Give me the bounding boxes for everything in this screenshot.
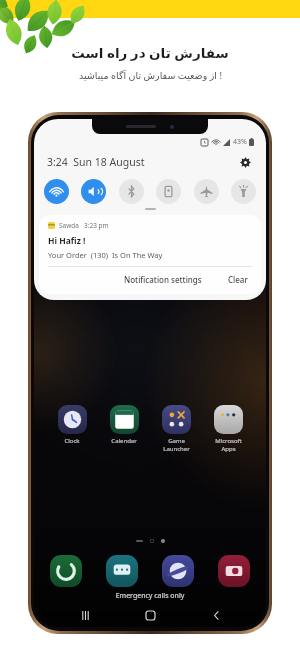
button[interactable]: Recents: [70, 603, 100, 627]
staticText: Notification settings: [124, 274, 202, 285]
button[interactable]: Quick setting: [44, 179, 69, 204]
staticText: از وضعیت سفارش تان آگاه میباشید !: [79, 69, 222, 82]
staticText: Your Order (130) Is On The Way: [48, 250, 163, 260]
staticText: سفارش تان در راه است: [71, 44, 229, 62]
button[interactable]: Clock: [48, 405, 96, 445]
button[interactable]: Clear: [224, 272, 252, 287]
button[interactable]: Quick setting: [81, 179, 106, 204]
staticText: Hi Hafiz !: [48, 235, 86, 247]
staticText: Microsoft Apps: [215, 437, 242, 453]
button[interactable]: Calendar: [100, 405, 148, 445]
button[interactable]: Notification settings: [120, 272, 206, 287]
staticText: 3:24 Sun 18 August: [47, 155, 145, 169]
button[interactable]: Quick setting: [194, 179, 219, 204]
button[interactable]: App: [106, 555, 138, 587]
button[interactable]: App: [50, 555, 82, 587]
staticText: Clock: [64, 437, 80, 445]
button[interactable]: Microsoft Apps: [204, 405, 252, 453]
staticText: Calendar: [111, 437, 137, 445]
button[interactable]: Quick setting: [231, 179, 256, 204]
staticText: Sawda: [59, 221, 79, 230]
staticText: 43%: [233, 137, 247, 147]
button[interactable]: App: [218, 555, 250, 587]
button[interactable]: Quick setting: [119, 179, 144, 204]
staticText: Clear: [228, 274, 248, 285]
button[interactable]: Home: [135, 603, 165, 627]
button[interactable]: Settings: [237, 154, 253, 170]
button[interactable]: Quick setting: [156, 179, 181, 204]
button[interactable]: Sawda: [39, 215, 261, 294]
button[interactable]: App: [162, 555, 194, 587]
staticText: 3:23 pm: [84, 221, 109, 230]
staticText: Game Launcher: [163, 437, 190, 453]
button[interactable]: Game Launcher: [152, 405, 200, 453]
staticText: Emergency calls only: [34, 591, 266, 601]
button[interactable]: Back: [201, 603, 231, 627]
